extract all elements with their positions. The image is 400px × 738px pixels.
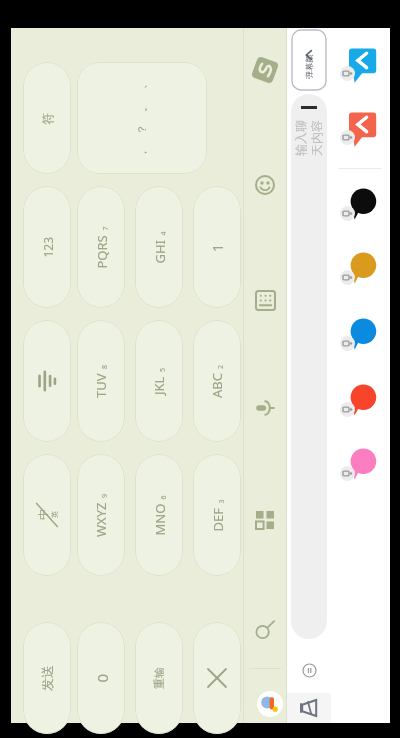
button[interactable]: 123 [23,186,71,308]
staticText: 。 [135,101,149,112]
button[interactable]: 红色弹幕 [333,102,389,158]
button[interactable]: 最近任务 [287,693,331,723]
staticText: 3 [216,498,226,503]
button[interactable]: 更多功能 [243,498,287,542]
button[interactable]: 标点符号 [77,62,207,174]
staticText: WXYZ [92,502,110,537]
button[interactable]: 橙色弹幕 [333,374,389,430]
staticText: 1 [208,243,227,252]
button[interactable]: WXYZ 9 [77,454,125,576]
staticText: 弹幕颜 [304,55,314,79]
staticText: 重输 [152,667,166,689]
staticText: 、 [135,78,149,89]
staticText: ABC [208,373,226,398]
staticText: JKL [150,376,168,395]
staticText: 英 [50,511,59,518]
staticText: PQRS [92,234,110,268]
button[interactable]: 蓝色弹幕2 [333,308,389,364]
button[interactable]: PQRS 7 [77,186,125,308]
staticText: 6 [158,494,168,499]
button[interactable]: 发送 [23,622,71,734]
button[interactable]: 符 [23,62,71,174]
button[interactable]: 键盘 [243,278,287,322]
staticText: 8 [100,364,110,369]
button[interactable]: 粉色弹幕 [333,438,389,494]
staticText: 输入聊天内容 [293,120,325,156]
button[interactable]: 0 [77,622,125,734]
staticText: MNO [150,503,168,535]
button[interactable]: 返回 [243,683,287,727]
staticText: 5 [158,367,168,372]
button[interactable]: 应用 [257,691,283,717]
button[interactable]: MNO 6 [135,454,183,576]
button[interactable]: 蓝色弹幕 [333,38,389,94]
button[interactable]: 中英切换 [23,454,71,576]
button[interactable]: 语音输入 [243,386,287,430]
button[interactable]: 黑色弹幕 [333,178,389,234]
staticText: ？ [135,124,149,135]
button[interactable]: 删除 [193,622,241,734]
button[interactable]: ABC 2 [193,320,241,442]
staticText: 4 [158,230,168,235]
button[interactable]: 更多 [287,648,331,693]
staticText: DEF [208,507,226,531]
button[interactable]: 1 [193,186,241,308]
button[interactable]: JKL 5 [135,320,183,442]
staticText: 123 [39,236,55,257]
button[interactable]: 金色弹幕 [333,242,389,298]
staticText: 9 [100,493,110,498]
button[interactable]: 弹幕颜色 [292,30,326,90]
button[interactable]: GHI 4 [135,186,183,308]
button[interactable]: 搜索 [243,608,287,652]
button[interactable]: 输入聊天内容 [291,94,327,639]
button[interactable]: TUV 8 [77,320,125,442]
staticText: TUV [92,373,110,398]
button[interactable]: DEF 3 [193,454,241,576]
button[interactable]: 搜狗输入法 [243,48,287,92]
staticText: 符 [39,112,54,124]
button[interactable]: 表情 [243,163,287,207]
staticText: GHI [150,239,168,263]
staticText: 发送 [39,665,55,691]
staticText: 0 [91,673,111,682]
staticText: 7 [100,225,110,230]
staticText: 中 [36,509,50,520]
staticText: 2 [216,364,226,369]
staticText: ， [135,147,149,158]
button[interactable]: 手写输入 [23,320,71,442]
button[interactable]: 重输 [135,622,183,734]
